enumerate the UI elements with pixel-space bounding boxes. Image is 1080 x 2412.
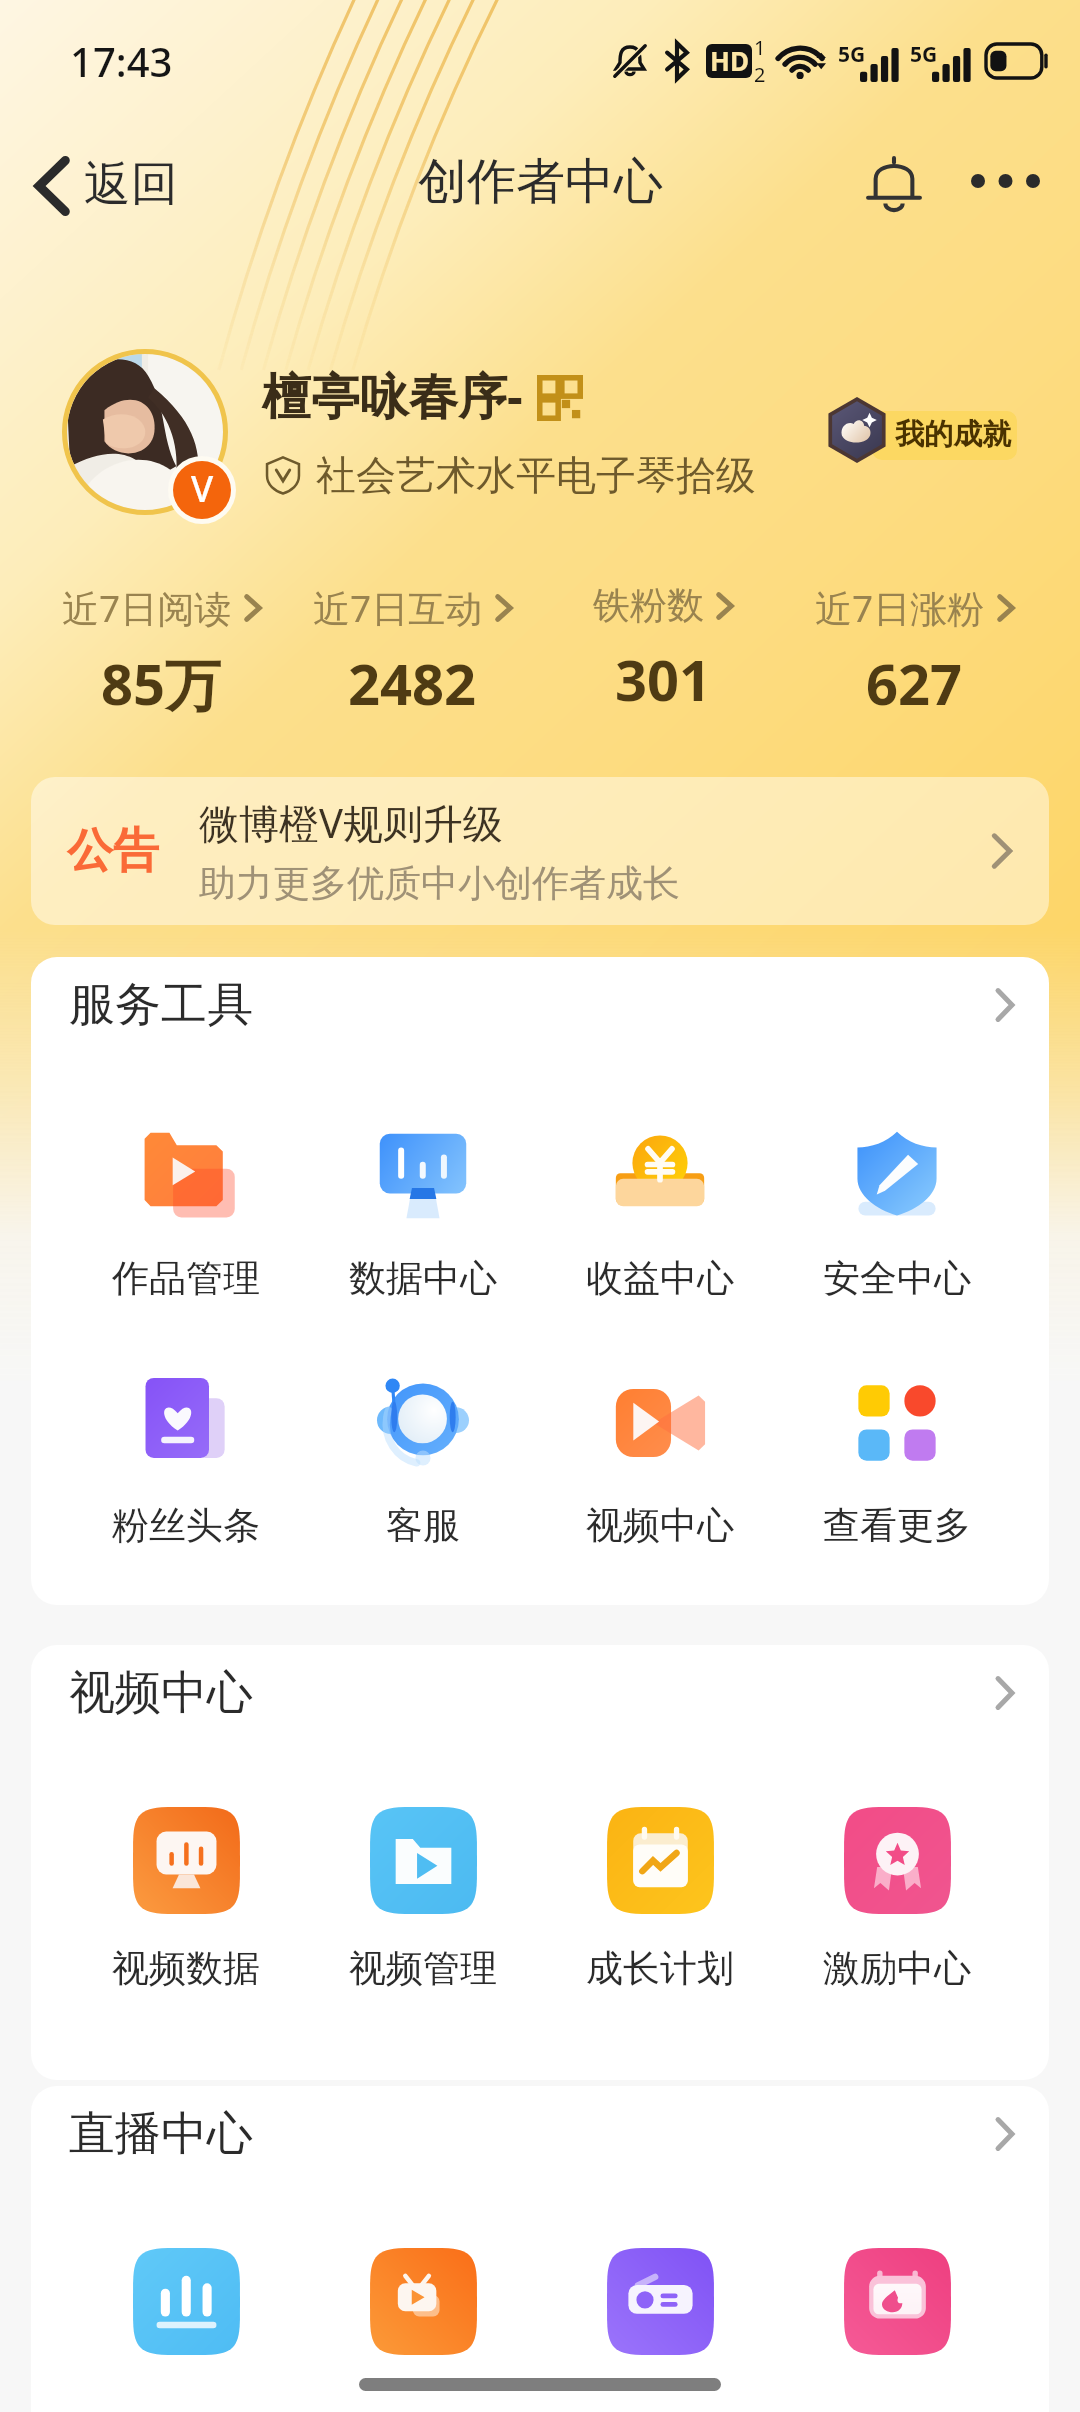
button[interactable]: 客服 (318, 1359, 528, 1587)
staticText: 近7日阅读 (62, 582, 232, 633)
button[interactable]: 返回 (0, 148, 198, 223)
staticText: V (191, 464, 214, 513)
button[interactable] (555, 2230, 765, 2412)
staticText: 粉丝头条 (112, 1502, 260, 1549)
staticText: 5G (910, 40, 938, 69)
staticText: 直播中心 (69, 2105, 253, 2163)
staticText: 安全中心 (823, 1255, 971, 1302)
button[interactable]: 服务工具 (31, 957, 1049, 1053)
button[interactable] (81, 2230, 291, 2412)
button[interactable]: More options (952, 133, 1058, 229)
button[interactable]: 近7日互动 (287, 578, 538, 725)
button[interactable]: 我的成就 (820, 393, 1020, 467)
button[interactable]: 视频管理 (318, 1789, 528, 2037)
staticText: 成长计划 (586, 1945, 734, 1992)
button[interactable]: 粉丝头条 (81, 1359, 291, 1587)
button[interactable]: 作品管理 (81, 1112, 291, 1340)
button[interactable]: 视频中心 (555, 1359, 765, 1587)
staticText: HD (710, 44, 749, 77)
button[interactable]: 安全中心 (792, 1112, 1002, 1340)
staticText: 作品管理 (112, 1255, 260, 1302)
button[interactable]: 激励中心 (792, 1789, 1002, 2037)
button[interactable]: Notifications (846, 133, 942, 229)
button[interactable]: 成长计划 (555, 1789, 765, 2037)
staticText: 查看更多 (823, 1502, 971, 1549)
button[interactable]: 铁粉数 (538, 578, 789, 721)
staticText: 2482 (348, 645, 477, 721)
staticText: 视频管理 (349, 1945, 497, 1992)
staticText: 近7日涨粉 (815, 582, 985, 633)
staticText: 檀亭咏春序- (262, 362, 523, 429)
staticText: 17:43 (70, 34, 173, 88)
button[interactable]: Avatar (62, 349, 228, 515)
button[interactable]: 公告 (31, 777, 1049, 925)
button[interactable]: 查看更多 (792, 1359, 1002, 1587)
staticText: 视频中心 (69, 1664, 253, 1722)
staticText: 创作者中心 (418, 151, 663, 213)
staticText: 301 (615, 641, 712, 717)
staticText: 我的成就 (895, 416, 1011, 453)
staticText: 微博橙V规则升级 (199, 795, 503, 850)
staticText: 铁粉数 (593, 582, 704, 629)
staticText: 公告 (67, 822, 159, 880)
staticText: 627 (866, 645, 963, 721)
staticText: 视频中心 (586, 1502, 734, 1549)
staticText: 收益中心 (586, 1255, 734, 1302)
button[interactable] (792, 2230, 1002, 2412)
staticText: 视频数据 (112, 1945, 260, 1992)
button[interactable]: 视频数据 (81, 1789, 291, 2037)
button[interactable]: 近7日阅读 (36, 578, 287, 725)
staticText: 返回 (84, 155, 178, 214)
staticText: 助力更多优质中小创作者成长 (199, 860, 680, 907)
staticText: 2 (754, 61, 766, 88)
button[interactable]: 视频中心 (31, 1645, 1049, 1741)
button[interactable]: 收益中心 (555, 1112, 765, 1340)
staticText: 1 (754, 34, 766, 61)
staticText: 社会艺术水平电子琴拾级 (316, 450, 756, 500)
staticText: 激励中心 (823, 1945, 971, 1992)
button[interactable]: 近7日涨粉 (789, 578, 1040, 725)
staticText: 服务工具 (69, 976, 253, 1034)
staticText: 数据中心 (349, 1255, 497, 1302)
staticText: 近7日互动 (313, 582, 483, 633)
staticText: 5G (838, 40, 866, 69)
button[interactable]: 直播中心 (31, 2086, 1049, 2182)
staticText: 客服 (386, 1502, 460, 1549)
button[interactable] (318, 2230, 528, 2412)
button[interactable]: 数据中心 (318, 1112, 528, 1340)
staticText: 85万 (101, 645, 222, 721)
